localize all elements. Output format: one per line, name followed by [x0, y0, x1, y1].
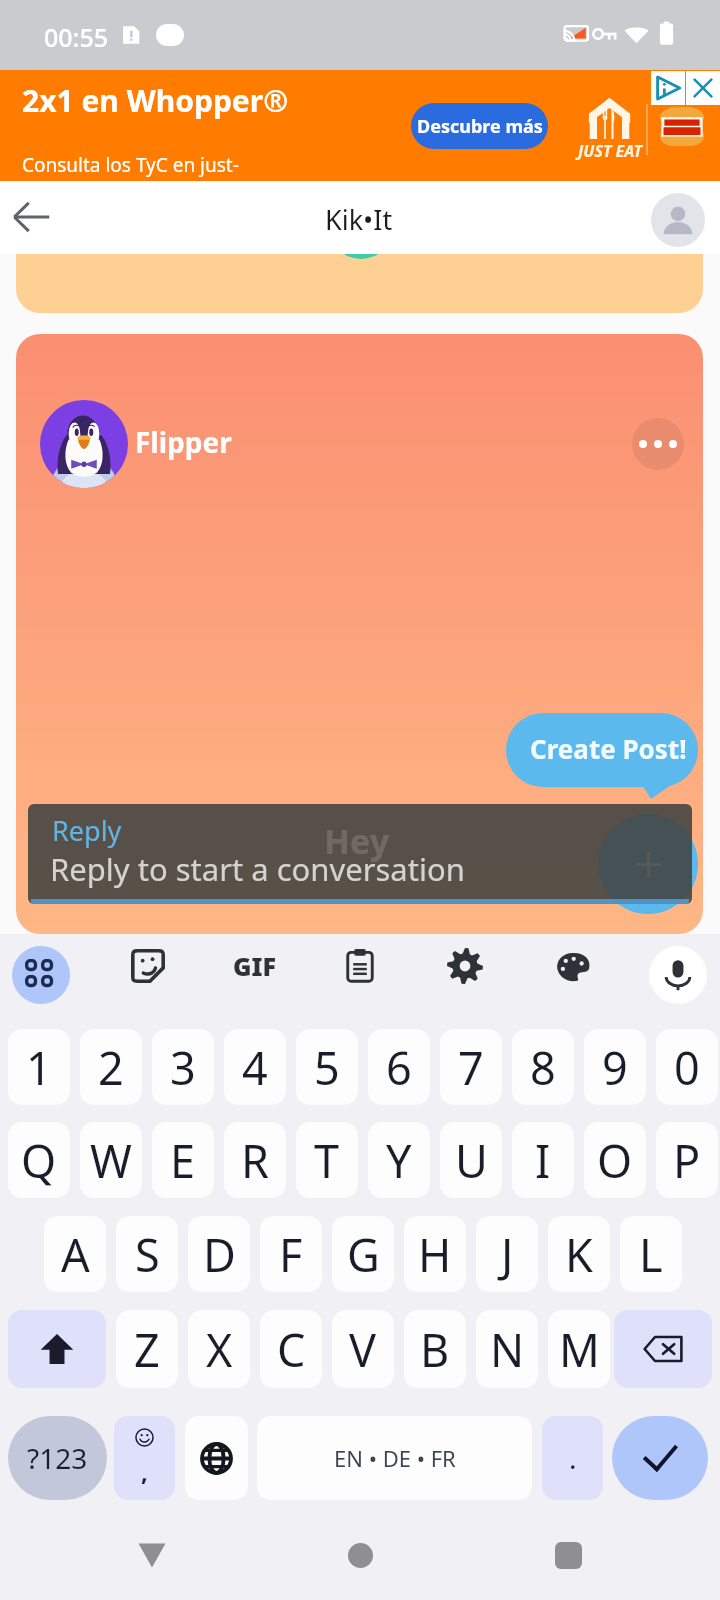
staticText: Consulta los TyC en just- eat.es/campana… — [22, 152, 274, 203]
button[interactable]: K — [548, 1216, 610, 1292]
button[interactable]: 1 — [8, 1029, 70, 1105]
button[interactable]: Y — [368, 1122, 430, 1198]
button[interactable]: Clipboard — [341, 947, 379, 985]
staticText: F — [279, 1224, 303, 1285]
button[interactable]: L — [620, 1216, 682, 1292]
staticText: W — [90, 1130, 132, 1191]
button[interactable]: More options — [632, 418, 684, 470]
staticText: 00:55 — [44, 20, 109, 54]
button[interactable]: Emoji — [114, 1416, 175, 1500]
button[interactable]: A — [44, 1216, 106, 1292]
staticText: Flipper — [135, 423, 232, 461]
button[interactable]: 0 — [656, 1029, 718, 1105]
staticText: 5 — [314, 1037, 340, 1098]
button[interactable]: Close ad — [686, 71, 720, 105]
staticText: 9 — [602, 1037, 628, 1098]
staticText: 6 — [386, 1037, 412, 1098]
button[interactable]: U — [440, 1122, 502, 1198]
button[interactable]: C — [260, 1310, 322, 1388]
staticText: S — [135, 1224, 160, 1285]
staticText: P — [673, 1130, 701, 1191]
staticText: G — [347, 1224, 380, 1285]
button[interactable]: Home — [330, 1510, 390, 1600]
button[interactable]: N — [476, 1310, 538, 1388]
button[interactable]: Hey — [28, 804, 692, 904]
button[interactable]: 2 — [80, 1029, 142, 1105]
button[interactable]: P — [656, 1122, 718, 1198]
button[interactable]: Change language — [185, 1416, 248, 1500]
button[interactable]: R — [224, 1122, 286, 1198]
button[interactable]: 7 — [440, 1029, 502, 1105]
button[interactable]: O — [584, 1122, 646, 1198]
button[interactable]: GIF — [227, 947, 281, 985]
staticText: JUST EAT — [578, 140, 643, 162]
button[interactable]: H — [404, 1216, 466, 1292]
button[interactable]: B — [404, 1310, 466, 1388]
button[interactable]: X — [188, 1310, 250, 1388]
button[interactable]: Stickers — [129, 947, 167, 985]
button[interactable]: Back — [3, 189, 59, 245]
button[interactable]: J — [476, 1216, 538, 1292]
button[interactable] — [16, 254, 703, 313]
button[interactable]: D — [188, 1216, 250, 1292]
button[interactable]: Enter — [612, 1416, 708, 1500]
staticText: 2 — [98, 1037, 124, 1098]
button[interactable]: Themes — [554, 947, 592, 985]
staticText: Z — [134, 1319, 160, 1380]
button[interactable]: Backspace — [614, 1310, 712, 1388]
staticText: E — [170, 1130, 196, 1191]
button[interactable]: 6 — [368, 1029, 430, 1105]
button[interactable]: Settings — [446, 947, 484, 985]
button[interactable]: S — [116, 1216, 178, 1292]
staticText: K — [565, 1224, 593, 1285]
button[interactable]: ?123 — [8, 1416, 107, 1500]
staticText: I — [535, 1130, 551, 1191]
button[interactable]: Shift — [8, 1310, 106, 1388]
button[interactable]: 4 — [224, 1029, 286, 1105]
button[interactable]: Apps — [12, 946, 70, 1004]
button[interactable]: Ad choices — [651, 71, 685, 105]
button[interactable]: F — [260, 1216, 322, 1292]
button[interactable]: Z — [116, 1310, 178, 1388]
button[interactable]: 5 — [296, 1029, 358, 1105]
button[interactable]: 2x1 en Whopper® — [0, 70, 720, 181]
staticText: . — [569, 1439, 577, 1477]
staticText: O — [597, 1130, 633, 1191]
staticText: Create Post! — [530, 731, 687, 766]
button[interactable]: Create post — [598, 814, 698, 914]
button[interactable]: Descubre más — [411, 103, 548, 149]
staticText: L — [639, 1224, 663, 1285]
button[interactable]: Q — [8, 1122, 70, 1198]
staticText: A — [61, 1224, 90, 1285]
staticText: 7 — [458, 1037, 484, 1098]
button[interactable]: Recent apps — [538, 1510, 598, 1600]
button[interactable]: Flipper — [16, 334, 703, 934]
button[interactable]: EN • DE • FR — [257, 1416, 532, 1500]
button[interactable]: Profile — [651, 193, 705, 247]
button[interactable]: 9 — [584, 1029, 646, 1105]
button[interactable]: . — [542, 1416, 603, 1500]
staticText: ?123 — [27, 1439, 88, 1477]
button[interactable]: Back — [122, 1510, 182, 1600]
button[interactable]: E — [152, 1122, 214, 1198]
staticText: C — [277, 1319, 306, 1380]
button[interactable]: Create Post! — [506, 713, 698, 799]
staticText: U — [455, 1130, 488, 1191]
staticText: Kik•It — [325, 201, 393, 238]
button[interactable]: 3 — [152, 1029, 214, 1105]
button[interactable]: G — [332, 1216, 394, 1292]
staticText: Descubre más — [417, 114, 543, 139]
button[interactable]: M — [548, 1310, 610, 1388]
staticText: 1 — [26, 1037, 52, 1098]
staticText: 0 — [674, 1037, 700, 1098]
staticText: R — [241, 1130, 269, 1191]
staticText: Reply — [52, 812, 122, 849]
staticText: T — [314, 1130, 340, 1191]
button[interactable]: V — [332, 1310, 394, 1388]
button[interactable]: T — [296, 1122, 358, 1198]
button[interactable]: Voice input — [649, 946, 707, 1004]
button[interactable]: W — [80, 1122, 142, 1198]
button[interactable]: I — [512, 1122, 574, 1198]
button[interactable]: 8 — [512, 1029, 574, 1105]
staticText: GIF — [233, 949, 276, 983]
